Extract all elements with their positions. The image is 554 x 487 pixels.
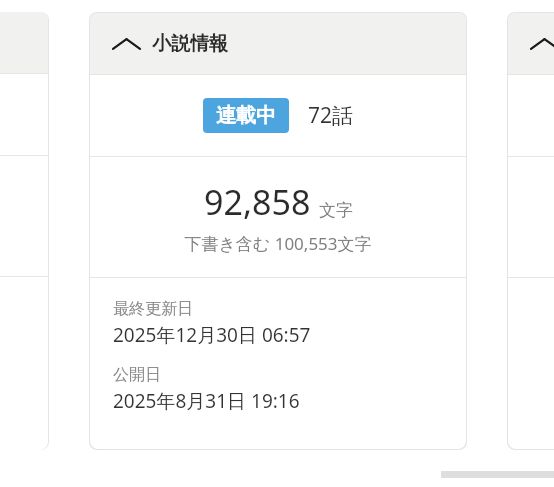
staticText: 72話 — [308, 101, 354, 130]
staticText: 下書き含む 100,553文字 — [184, 232, 372, 255]
staticText: 連載中 — [216, 103, 276, 128]
staticText: 文字 — [319, 200, 353, 221]
other: 折りたたむ — [531, 33, 554, 55]
staticText: 公開日 — [113, 365, 161, 385]
staticText: 92,858 — [204, 179, 311, 225]
button[interactable]: 連載中 — [203, 98, 289, 133]
staticText: 小説情報 — [152, 32, 228, 56]
button[interactable]: 折りたたむ — [90, 13, 466, 74]
button[interactable]: 折りたたむ — [508, 13, 554, 74]
other: 折りたたむ — [113, 33, 140, 55]
staticText: 2025年8月31日 19:16 — [113, 388, 300, 414]
staticText: 2025年12月30日 06:57 — [113, 322, 311, 348]
staticText: 最終更新日 — [113, 299, 193, 319]
